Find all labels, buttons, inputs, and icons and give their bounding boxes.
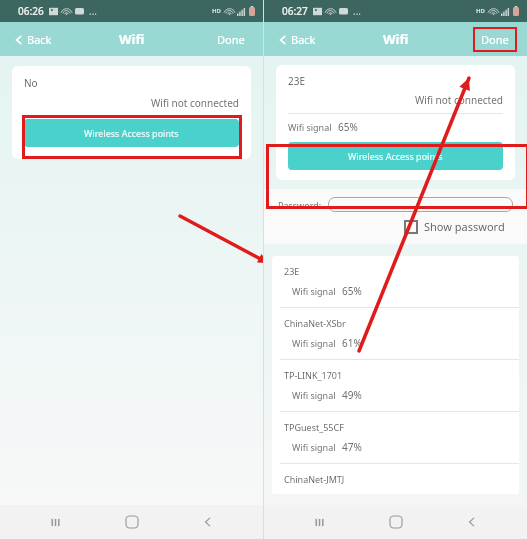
staticText: 23E xyxy=(288,74,305,88)
staticText: Wifi signal xyxy=(292,389,336,401)
staticText: 49% xyxy=(342,388,362,402)
button[interactable]: TP-LINK_1701 xyxy=(272,360,519,411)
button[interactable]: Recent apps xyxy=(297,505,341,539)
button[interactable]: Wireless Access points xyxy=(24,119,239,147)
staticText: ChinaNet-XSbr xyxy=(284,317,346,329)
button[interactable]: Back xyxy=(274,28,320,51)
staticText: Show password xyxy=(424,219,505,234)
button[interactable]: Password field xyxy=(328,197,513,212)
button[interactable]: ChinaNet-JMTJ xyxy=(272,464,519,494)
staticText: 23E xyxy=(284,265,300,277)
staticText: 47% xyxy=(342,440,362,454)
staticText: Wifi signal xyxy=(292,441,336,453)
staticText: Wifi xyxy=(383,30,409,48)
button[interactable]: Back xyxy=(450,505,494,539)
staticText: Back xyxy=(291,32,316,47)
button[interactable]: Recent apps xyxy=(33,505,77,539)
staticText: Wifi signal xyxy=(292,337,336,349)
staticText: Back xyxy=(27,32,52,47)
button[interactable]: Home xyxy=(374,505,418,539)
staticText: Done xyxy=(217,32,245,47)
staticText: Password: xyxy=(278,199,322,211)
staticText: Wifi signal xyxy=(288,121,332,133)
button[interactable]: Home xyxy=(110,505,154,539)
button[interactable]: ChinaNet-XSbr xyxy=(272,308,519,359)
button[interactable]: 23E xyxy=(272,256,519,307)
button[interactable]: Done xyxy=(209,27,253,52)
staticText: No xyxy=(24,76,38,90)
button[interactable]: TPGuest_55CF xyxy=(272,412,519,463)
staticText: 65% xyxy=(338,120,358,134)
staticText: HD xyxy=(476,7,485,15)
staticText: 65% xyxy=(342,284,362,298)
staticText: Wireless Access points xyxy=(84,127,179,139)
staticText: ... xyxy=(89,4,98,18)
button[interactable]: Wireless Access points xyxy=(288,142,503,170)
button[interactable]: Back xyxy=(186,505,230,539)
staticText: 06:27 xyxy=(282,4,308,18)
button[interactable]: Done xyxy=(473,27,517,52)
button[interactable]: Back xyxy=(10,28,56,51)
staticText: Wireless Access points xyxy=(348,150,443,162)
staticText: Wifi not connected xyxy=(24,96,239,110)
staticText: HD xyxy=(212,7,221,15)
staticText: Done xyxy=(481,32,509,47)
staticText: 06:26 xyxy=(18,4,44,18)
button[interactable]: Show password xyxy=(278,219,513,234)
staticText: ... xyxy=(353,4,362,18)
staticText: Wifi not connected xyxy=(288,93,503,107)
staticText: ChinaNet-JMTJ xyxy=(284,473,345,485)
staticText: Wifi xyxy=(119,30,145,48)
staticText: Wifi signal xyxy=(292,285,336,297)
staticText: TPGuest_55CF xyxy=(284,421,344,433)
staticText: TP-LINK_1701 xyxy=(284,369,343,381)
staticText: 61% xyxy=(342,336,362,350)
